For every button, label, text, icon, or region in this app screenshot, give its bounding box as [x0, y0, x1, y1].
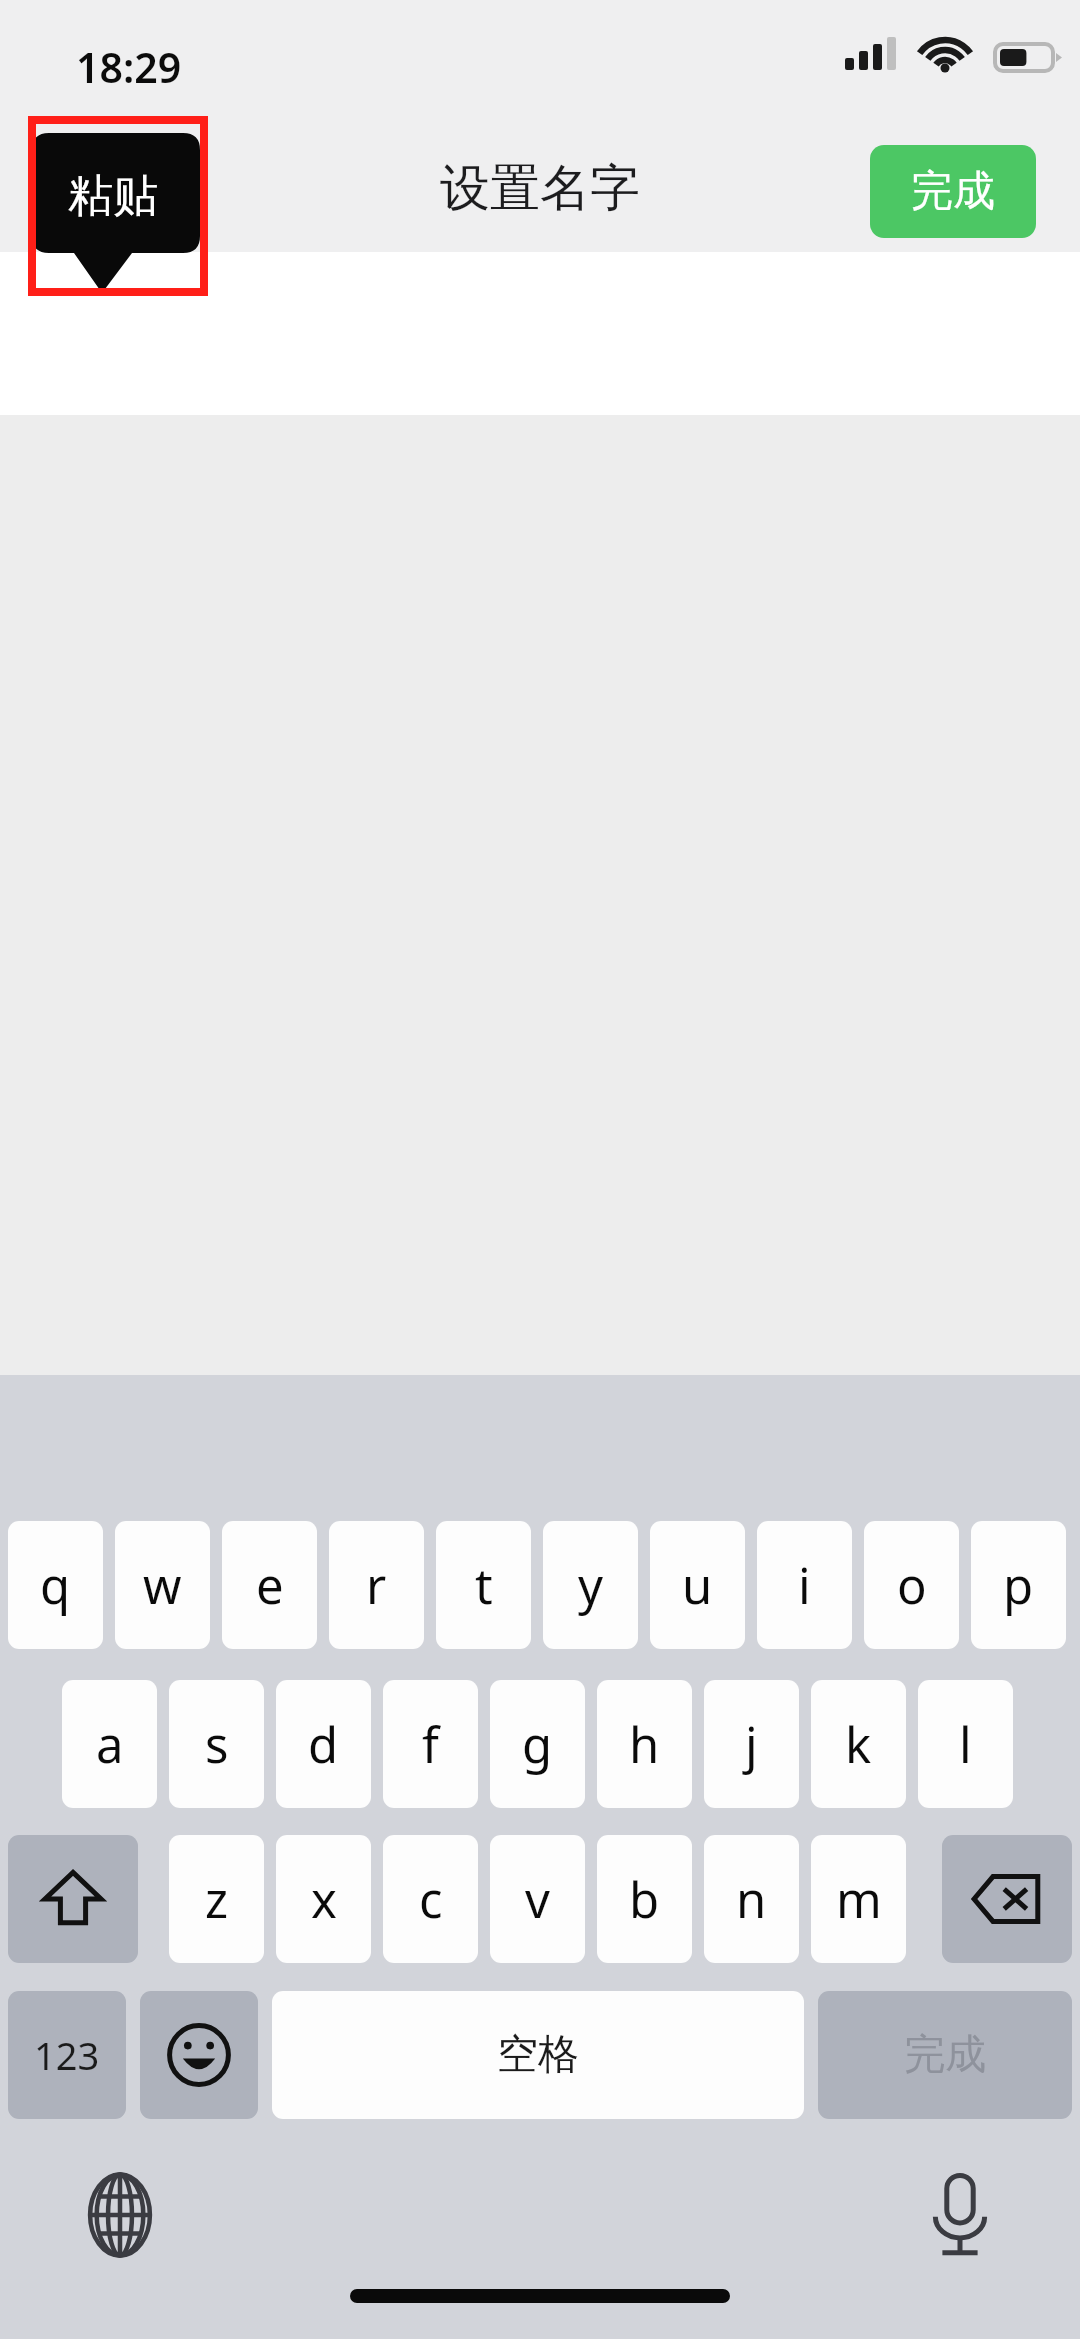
staticText: q: [40, 1552, 71, 1619]
staticText: g: [522, 1711, 553, 1778]
staticText: s: [205, 1711, 229, 1778]
staticText: h: [629, 1711, 660, 1778]
button[interactable]: b: [597, 1835, 692, 1963]
staticText: x: [311, 1866, 337, 1933]
button[interactable]: Emoji: [140, 1991, 258, 2119]
staticText: 空格: [497, 2029, 579, 2081]
staticText: u: [682, 1552, 713, 1619]
staticText: o: [897, 1552, 927, 1619]
button[interactable]: w: [115, 1521, 210, 1649]
button[interactable]: g: [490, 1680, 585, 1808]
button[interactable]: l: [918, 1680, 1013, 1808]
button[interactable]: j: [704, 1680, 799, 1808]
staticText: z: [205, 1866, 229, 1933]
button[interactable]: k: [811, 1680, 906, 1808]
button[interactable]: z: [169, 1835, 264, 1963]
button[interactable]: Dictate: [898, 2153, 1022, 2277]
staticText: l: [959, 1711, 972, 1778]
staticText: j: [745, 1711, 758, 1778]
button[interactable]: 123: [8, 1991, 126, 2119]
button[interactable]: m: [811, 1835, 906, 1963]
button[interactable]: 完成: [818, 1991, 1072, 2119]
button[interactable]: Shift: [8, 1835, 138, 1963]
staticText: y: [578, 1552, 603, 1619]
button[interactable]: a: [62, 1680, 157, 1808]
staticText: r: [366, 1552, 387, 1619]
button[interactable]: c: [383, 1835, 478, 1963]
button[interactable]: x: [276, 1835, 371, 1963]
button[interactable]: r: [329, 1521, 424, 1649]
button[interactable]: Change keyboard language: [58, 2153, 182, 2277]
staticText: n: [736, 1866, 767, 1933]
staticText: 粘贴: [68, 168, 158, 225]
staticText: k: [845, 1711, 872, 1778]
button[interactable]: t: [436, 1521, 531, 1649]
staticText: 完成: [904, 2029, 986, 2081]
staticText: b: [629, 1866, 660, 1933]
button[interactable]: 完成: [870, 145, 1036, 238]
button[interactable]: 粘贴: [30, 118, 206, 298]
staticText: 123: [34, 2029, 100, 2081]
button[interactable]: f: [383, 1680, 478, 1808]
staticText: w: [143, 1552, 182, 1619]
staticText: t: [475, 1552, 493, 1619]
button[interactable]: u: [650, 1521, 745, 1649]
button[interactable]: e: [222, 1521, 317, 1649]
staticText: m: [836, 1866, 882, 1933]
button[interactable]: Backspace: [942, 1835, 1072, 1963]
button[interactable]: s: [169, 1680, 264, 1808]
staticText: f: [422, 1711, 439, 1778]
staticText: e: [256, 1552, 284, 1619]
button[interactable]: y: [543, 1521, 638, 1649]
staticText: p: [1003, 1552, 1034, 1619]
staticText: v: [525, 1866, 550, 1933]
staticText: 18:29: [76, 39, 182, 95]
staticText: 设置名字: [420, 157, 660, 220]
staticText: 完成: [911, 165, 995, 218]
button[interactable]: o: [864, 1521, 959, 1649]
staticText: c: [419, 1866, 443, 1933]
button[interactable]: h: [597, 1680, 692, 1808]
button[interactable]: n: [704, 1835, 799, 1963]
staticText: a: [96, 1711, 124, 1778]
staticText: d: [308, 1711, 339, 1778]
button[interactable]: v: [490, 1835, 585, 1963]
button[interactable]: q: [8, 1521, 103, 1649]
button[interactable]: d: [276, 1680, 371, 1808]
staticText: i: [798, 1552, 811, 1619]
button[interactable]: 空格: [272, 1991, 804, 2119]
button[interactable]: p: [971, 1521, 1066, 1649]
button[interactable]: i: [757, 1521, 852, 1649]
